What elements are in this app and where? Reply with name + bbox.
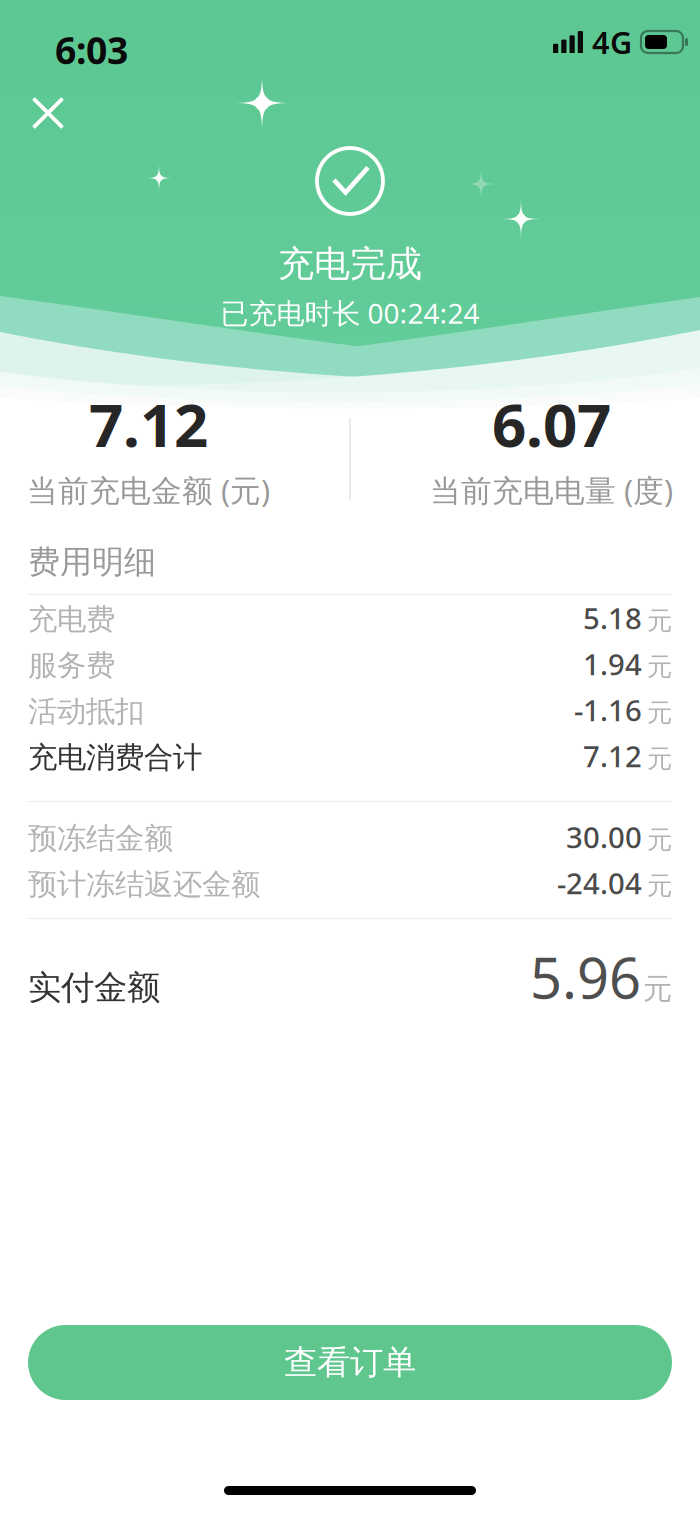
- staticText: 预冻结金额: [28, 820, 173, 856]
- staticText: 4G: [592, 22, 632, 62]
- staticText: 6.07: [492, 384, 611, 464]
- staticText: 费用明细: [28, 542, 156, 582]
- staticText: 元: [643, 971, 672, 1007]
- staticText: 5.96: [530, 940, 641, 1014]
- staticText: 服务费: [28, 647, 115, 683]
- staticText: 元: [647, 870, 672, 901]
- staticText: 当前充电电量 (度): [430, 470, 673, 510]
- staticText: 7.12: [583, 736, 642, 775]
- staticText: 已充电时长 00:24:24: [220, 294, 479, 331]
- staticText: 元: [647, 743, 672, 774]
- staticText: 7.12: [89, 384, 208, 464]
- staticText: 充电消费合计: [28, 739, 202, 775]
- staticText: 充电完成: [278, 242, 422, 286]
- staticText: 元: [647, 605, 672, 636]
- staticText: -24.04: [557, 863, 642, 902]
- staticText: 1.94: [583, 644, 642, 683]
- button[interactable]: Close: [17, 82, 79, 144]
- staticText: 活动抵扣: [28, 693, 144, 729]
- staticText: -1.16: [574, 690, 642, 729]
- staticText: 查看订单: [284, 1342, 416, 1383]
- staticText: 预计冻结返还金额: [28, 866, 260, 902]
- staticText: 元: [647, 824, 672, 855]
- staticText: 当前充电金额 (元): [27, 470, 270, 510]
- button[interactable]: 查看订单: [28, 1325, 672, 1400]
- staticText: 元: [647, 697, 672, 728]
- staticText: 元: [647, 651, 672, 682]
- staticText: 30.00: [566, 817, 642, 856]
- staticText: 6:03: [55, 25, 128, 75]
- staticText: 实付金额: [28, 967, 160, 1008]
- staticText: 充电费: [28, 601, 115, 637]
- staticText: 5.18: [583, 598, 642, 637]
